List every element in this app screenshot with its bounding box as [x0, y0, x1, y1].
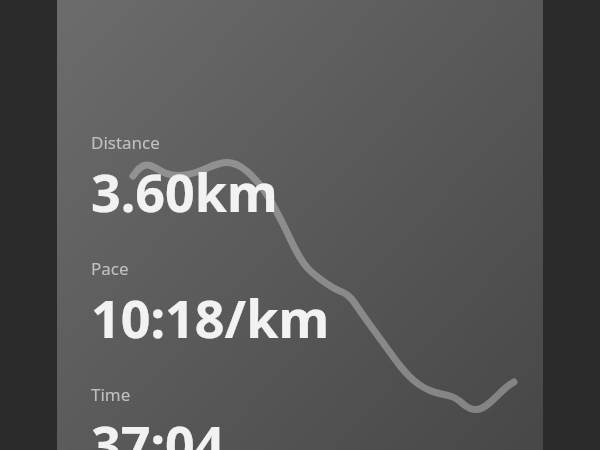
button[interactable]: Run map — [57, 0, 543, 450]
staticText: 3.60km — [91, 156, 278, 227]
staticText: 37:04 — [91, 408, 225, 450]
staticText: Pace — [91, 257, 129, 280]
staticText: 10:18/km — [91, 282, 330, 353]
button[interactable]: Time — [91, 383, 233, 450]
staticText: Time — [91, 383, 131, 406]
button[interactable]: Pace — [91, 257, 338, 353]
button[interactable]: Distance — [91, 131, 286, 227]
staticText: Distance — [91, 131, 160, 154]
